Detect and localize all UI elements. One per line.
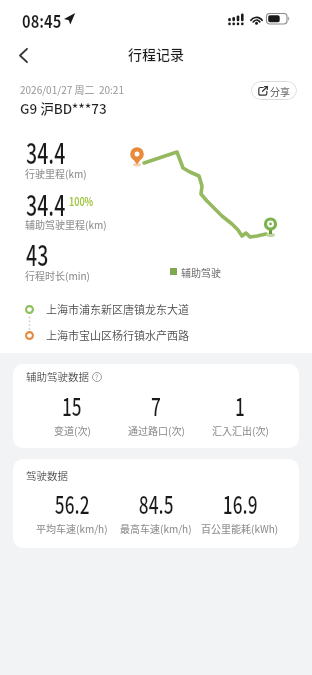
staticText: 分享 xyxy=(270,84,290,98)
staticText: 百公里能耗(kWh) xyxy=(201,521,279,535)
staticText: 行驶里程(km) xyxy=(25,166,87,180)
staticText: 56.2 xyxy=(55,486,90,521)
button[interactable]: 驾驶数据 xyxy=(13,459,299,548)
staticText: 2026/01/27 周二 20:21 xyxy=(20,82,124,96)
button[interactable] xyxy=(8,42,38,68)
staticText: 34.4 xyxy=(26,184,66,225)
staticText: G9 沪BD***73 xyxy=(20,98,107,118)
staticText: 上海市宝山区杨行镇水产西路 xyxy=(46,327,189,343)
staticText: ? xyxy=(95,372,99,382)
staticText: 1 xyxy=(235,388,245,423)
staticText: 15 xyxy=(62,388,82,423)
staticText: 平均车速(km/h) xyxy=(36,521,108,535)
staticText: 7 xyxy=(151,388,161,423)
staticText: 辅助驾驶 xyxy=(181,265,221,279)
staticText: 行程记录 xyxy=(128,44,184,64)
staticText: 通过路口(次) xyxy=(128,423,185,437)
staticText: 行程时长(min) xyxy=(25,268,90,282)
button[interactable]: 分享 xyxy=(251,81,297,100)
staticText: 84.5 xyxy=(139,486,174,521)
staticText: 100% xyxy=(69,192,93,209)
button[interactable]: 辅助驾驶数据 xyxy=(13,364,299,448)
staticText: 辅助驾驶里程(km) xyxy=(25,217,107,231)
staticText: 43 xyxy=(26,234,48,275)
staticText: 辅助驾驶数据 xyxy=(26,369,89,384)
staticText: 34.4 xyxy=(26,132,66,173)
staticText: 变道(次) xyxy=(54,423,91,437)
staticText: 08:45 xyxy=(22,8,62,33)
staticText: 汇入汇出(次) xyxy=(212,423,269,437)
staticText: 上海市浦东新区唐镇龙东大道 xyxy=(46,301,189,317)
staticText: 最高车速(km/h) xyxy=(120,521,192,535)
staticText: 16.9 xyxy=(223,486,258,521)
staticText: 驾驶数据 xyxy=(26,468,68,483)
